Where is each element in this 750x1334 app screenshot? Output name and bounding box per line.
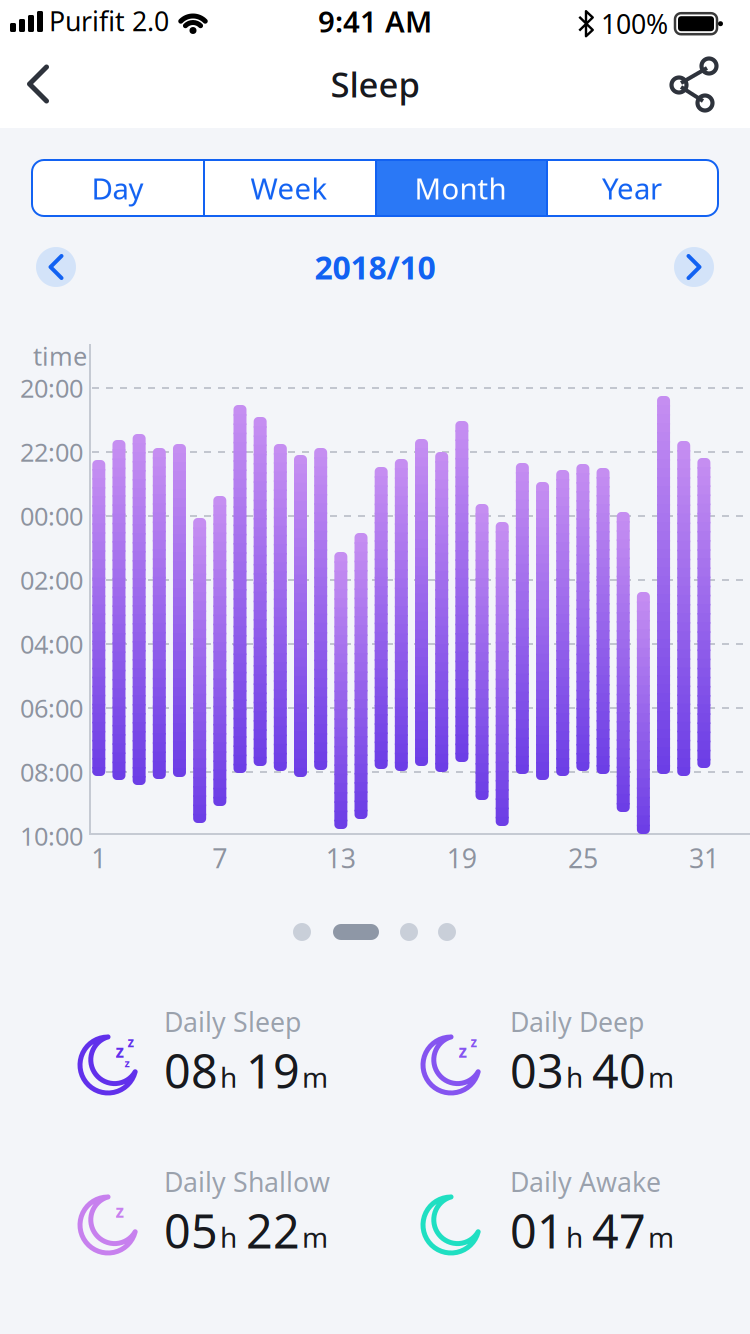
staticText: m <box>648 1058 674 1095</box>
staticText: 40 <box>592 1039 646 1101</box>
staticText: 100% <box>601 6 668 41</box>
button[interactable]: Next month <box>674 247 714 287</box>
button[interactable]: Page 1 <box>293 923 311 941</box>
staticText: 05 <box>164 1199 218 1261</box>
staticText: z <box>115 1039 124 1062</box>
staticText: z <box>127 1033 134 1051</box>
staticText: m <box>302 1218 328 1255</box>
staticText: 22:00 <box>20 435 83 469</box>
staticText: 25 <box>568 840 598 876</box>
staticText: Purifit 2.0 <box>49 3 169 39</box>
staticText: 19 <box>246 1039 300 1101</box>
staticText: Month <box>414 168 506 207</box>
staticText: z <box>458 1039 467 1062</box>
staticText: h <box>220 1058 237 1095</box>
button[interactable]: Day <box>32 160 203 216</box>
staticText: 06:00 <box>20 691 83 725</box>
staticText: 08:00 <box>20 755 83 789</box>
staticText: Day <box>91 168 143 207</box>
staticText: 2018/10 <box>314 246 435 288</box>
staticText: 08 <box>164 1039 218 1101</box>
staticText: 00:00 <box>20 499 83 533</box>
staticText: Daily Shallow <box>164 1164 330 1199</box>
staticText: 19 <box>447 840 477 876</box>
staticText: h <box>566 1058 583 1095</box>
staticText: Daily Awake <box>510 1164 661 1199</box>
button[interactable]: Page 4 <box>438 923 456 941</box>
button[interactable]: Previous month <box>36 247 76 287</box>
staticText: 10:00 <box>20 819 83 853</box>
staticText: z <box>470 1033 477 1051</box>
staticText: z <box>115 1199 124 1222</box>
staticText: 20:00 <box>20 371 83 405</box>
staticText: 22 <box>246 1199 300 1261</box>
staticText: 02:00 <box>20 563 83 597</box>
staticText: Sleep <box>330 61 419 107</box>
staticText: 47 <box>592 1199 646 1261</box>
staticText: Daily Sleep <box>164 1004 301 1039</box>
staticText: time <box>33 339 87 373</box>
button[interactable]: Page 3 <box>400 923 418 941</box>
staticText: 01 <box>510 1199 564 1261</box>
button[interactable]: Page 2 <box>333 924 379 940</box>
staticText: h <box>566 1218 583 1255</box>
button[interactable]: Share <box>670 57 718 111</box>
staticText: m <box>302 1058 328 1095</box>
staticText: Daily Deep <box>510 1004 644 1039</box>
staticText: Year <box>602 168 662 207</box>
staticText: 1 <box>91 840 106 876</box>
staticText: h <box>220 1218 237 1255</box>
button[interactable]: Month <box>375 160 546 216</box>
staticText: m <box>648 1218 674 1255</box>
staticText: 03 <box>510 1039 564 1101</box>
staticText: 31 <box>689 840 719 876</box>
staticText: 13 <box>326 840 356 876</box>
staticText: 9:41 AM <box>318 1 432 40</box>
staticText: Week <box>250 168 327 207</box>
staticText: z <box>124 1056 129 1070</box>
button[interactable]: Back <box>14 54 62 114</box>
button[interactable]: Year <box>546 160 718 216</box>
button[interactable]: Week <box>203 160 375 216</box>
staticText: 7 <box>212 840 227 876</box>
staticText: 04:00 <box>20 627 83 661</box>
